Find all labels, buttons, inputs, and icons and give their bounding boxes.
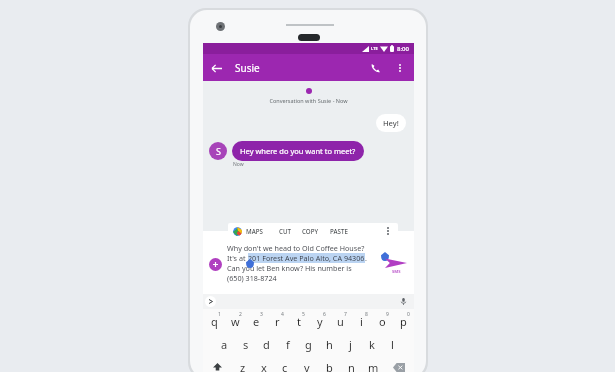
button[interactable]: y <box>309 309 330 333</box>
button[interactable]: t <box>288 309 309 333</box>
staticText: o <box>379 314 386 329</box>
button[interactable]: j <box>340 333 361 356</box>
button[interactable]: More <box>381 224 395 238</box>
staticText: 9 <box>386 311 389 318</box>
staticText: v <box>304 360 310 372</box>
staticText: LTE <box>371 46 378 51</box>
staticText: . <box>365 253 367 263</box>
staticText: h <box>326 337 333 352</box>
button[interactable]: m <box>362 356 384 372</box>
staticText: c <box>282 360 288 372</box>
button[interactable]: Backspace <box>384 356 414 372</box>
button[interactable]: p <box>393 309 414 333</box>
button[interactable]: g <box>298 333 319 356</box>
button[interactable]: Call <box>363 55 389 81</box>
button[interactable]: COPY <box>302 227 319 235</box>
staticText: 0 <box>407 311 410 318</box>
staticText: k <box>369 337 375 352</box>
button[interactable]: Shift <box>203 356 232 372</box>
staticText: e <box>253 314 260 329</box>
staticText: Susie <box>235 61 260 75</box>
staticText: Hey where do you want to meet? <box>240 146 356 156</box>
button[interactable]: v <box>296 356 318 372</box>
staticText: Now <box>233 161 244 168</box>
staticText: 8:00 <box>397 45 409 53</box>
staticText: y <box>317 314 323 329</box>
button[interactable]: x <box>253 356 274 372</box>
staticText: Can you let Ben know? His number is <box>227 263 352 273</box>
button[interactable]: s <box>235 333 256 356</box>
staticText: 7 <box>344 311 347 318</box>
button[interactable]: u <box>330 309 351 333</box>
staticText: n <box>348 360 355 372</box>
staticText: Hey! <box>383 118 399 128</box>
staticText: 6 <box>323 311 326 318</box>
button[interactable]: Voice input <box>397 295 410 308</box>
staticText: a <box>221 337 228 352</box>
button[interactable]: e <box>246 309 267 333</box>
button[interactable]: CUT <box>279 227 291 235</box>
staticText: u <box>337 314 344 329</box>
staticText: It's at <box>227 253 248 263</box>
button[interactable]: k <box>361 333 382 356</box>
staticText: r <box>275 314 280 329</box>
button[interactable]: Hey where do you want to meet? <box>240 146 356 156</box>
staticText: l <box>391 337 394 352</box>
button[interactable]: Back <box>203 55 229 81</box>
button[interactable]: r <box>267 309 288 333</box>
staticText: i <box>360 314 363 329</box>
button[interactable]: Send SMS <box>385 256 411 278</box>
button[interactable]: h <box>319 333 340 356</box>
button[interactable]: a <box>214 333 235 356</box>
staticText: x <box>261 360 267 372</box>
staticText: 5 <box>302 311 305 318</box>
staticText: S <box>216 145 221 157</box>
button[interactable]: More options <box>389 57 411 79</box>
button[interactable]: f <box>277 333 298 356</box>
staticText: 201 Forest Ave Palo Alto, CA 94306 <box>248 253 365 263</box>
staticText: t <box>297 314 301 329</box>
staticText: Why don't we head to Old Coffee House? <box>227 243 365 253</box>
button[interactable]: w <box>225 309 246 333</box>
button[interactable]: q <box>203 309 225 333</box>
button[interactable]: PASTE <box>330 227 348 235</box>
staticText: f <box>286 337 290 352</box>
button[interactable]: l <box>382 333 403 356</box>
staticText: Conversation with Susie - Now <box>269 97 348 104</box>
staticText: 2 <box>239 311 242 318</box>
button[interactable]: MAPS <box>246 227 263 235</box>
staticText: q <box>211 314 218 329</box>
staticText: (650) 318-8724 <box>227 273 277 283</box>
button[interactable]: d <box>256 333 277 356</box>
staticText: d <box>263 337 270 352</box>
staticText: g <box>305 337 312 352</box>
staticText: 1 <box>218 311 221 318</box>
staticText: j <box>349 337 352 352</box>
staticText: s <box>243 337 249 352</box>
button[interactable]: c <box>274 356 296 372</box>
staticText: SMS <box>392 269 401 275</box>
staticText: p <box>400 314 407 329</box>
button[interactable]: i <box>351 309 372 333</box>
staticText: z <box>240 360 246 372</box>
staticText: 8 <box>365 311 368 318</box>
button[interactable]: Hey! <box>383 118 399 128</box>
staticText: b <box>326 360 333 372</box>
button[interactable]: Expand <box>205 296 216 307</box>
staticText: 4 <box>281 311 284 318</box>
button[interactable]: n <box>340 356 362 372</box>
button[interactable]: z <box>232 356 253 372</box>
button[interactable]: b <box>318 356 340 372</box>
staticText: w <box>231 314 240 329</box>
staticText: 3 <box>260 311 263 318</box>
button[interactable]: Attach <box>209 258 222 271</box>
button[interactable]: o <box>372 309 393 333</box>
staticText: m <box>368 360 379 372</box>
